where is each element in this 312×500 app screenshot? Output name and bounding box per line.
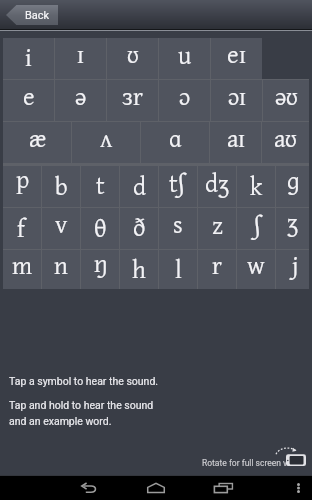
button[interactable]: r xyxy=(198,250,236,289)
button[interactable]: ə xyxy=(55,80,106,121)
button[interactable]: ʃ xyxy=(237,208,275,249)
button[interactable]: m xyxy=(3,250,41,289)
button[interactable]: dʒ xyxy=(198,166,236,207)
button[interactable]: k xyxy=(237,166,275,207)
button[interactable]: ʊ xyxy=(107,38,158,79)
button[interactable]: ð xyxy=(120,208,158,249)
staticText: Rotate for full screen view xyxy=(202,458,301,468)
button[interactable]: d xyxy=(120,166,158,207)
button[interactable]: θ xyxy=(81,208,119,249)
button[interactable]: ɔɪ xyxy=(211,80,262,121)
button[interactable]: p xyxy=(3,166,41,207)
button[interactable]: ʌ xyxy=(72,122,140,163)
button[interactable]: ɪ xyxy=(55,38,106,79)
button[interactable]: ɑ xyxy=(141,122,209,163)
button[interactable]: l xyxy=(159,250,197,289)
button[interactable]: n xyxy=(42,250,80,289)
button[interactable]: i xyxy=(3,38,54,79)
button[interactable]: aʊ xyxy=(262,122,309,163)
staticText: Back xyxy=(25,9,50,22)
button[interactable]: h xyxy=(120,250,158,289)
button[interactable]: Back xyxy=(6,5,58,25)
staticText: Tap and hold to hear the sound and an ex… xyxy=(9,399,154,427)
button[interactable]: Recent apps xyxy=(203,475,243,500)
button[interactable]: ŋ xyxy=(81,250,119,289)
button[interactable]: eɪ xyxy=(211,38,262,79)
button[interactable]: b xyxy=(42,166,80,207)
button[interactable]: u xyxy=(159,38,210,79)
button[interactable]: e xyxy=(3,80,54,121)
button[interactable]: t xyxy=(81,166,119,207)
button[interactable]: ʒ xyxy=(276,208,309,249)
button[interactable]: əʊ xyxy=(263,80,309,121)
button[interactable]: Back xyxy=(69,475,109,500)
button[interactable]: More options xyxy=(288,475,309,500)
button[interactable]: s xyxy=(159,208,197,249)
button[interactable]: ɔ xyxy=(159,80,210,121)
button[interactable]: w xyxy=(237,250,275,289)
button[interactable]: Rotate for full screen view xyxy=(198,446,310,470)
button[interactable]: j xyxy=(276,250,309,289)
button[interactable]: ɡ xyxy=(276,166,309,207)
button[interactable]: æ xyxy=(3,122,71,163)
button[interactable]: tʃ xyxy=(159,166,197,207)
staticText: Tap a symbol to hear the sound. xyxy=(9,375,159,387)
button[interactable]: v xyxy=(42,208,80,249)
button[interactable]: f xyxy=(3,208,41,249)
button[interactable]: ɜr xyxy=(107,80,158,121)
button[interactable]: aɪ xyxy=(210,122,261,163)
button[interactable]: Home xyxy=(136,475,176,500)
button[interactable]: z xyxy=(198,208,236,249)
